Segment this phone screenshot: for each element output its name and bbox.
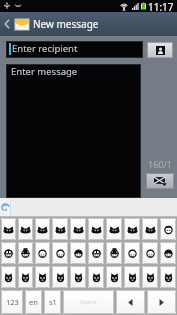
button[interactable]: [106, 266, 122, 288]
button[interactable]: [35, 266, 50, 288]
button[interactable]: [18, 242, 33, 264]
staticText: New message: [33, 17, 99, 31]
button[interactable]: Back: [0, 12, 13, 36]
staticText: Enter message: [11, 65, 78, 78]
button[interactable]: [88, 242, 104, 264]
button[interactable]: [142, 266, 158, 288]
button[interactable]: [160, 266, 176, 288]
button[interactable]: Enter message: [7, 65, 140, 197]
button[interactable]: [106, 218, 122, 240]
button[interactable]: [52, 266, 68, 288]
button[interactable]: Next: [147, 290, 176, 314]
button[interactable]: [35, 242, 50, 264]
button[interactable]: [124, 266, 140, 288]
button[interactable]: [1, 242, 16, 264]
button[interactable]: [18, 218, 33, 240]
button[interactable]: [160, 242, 176, 264]
staticText: Space: [80, 298, 97, 306]
button[interactable]: s1: [44, 290, 61, 314]
button[interactable]: Previous: [116, 290, 145, 314]
button[interactable]: Enter recipient: [7, 42, 142, 57]
button[interactable]: 123: [1, 290, 23, 314]
button[interactable]: [88, 218, 104, 240]
button[interactable]: [18, 266, 33, 288]
button[interactable]: [52, 242, 68, 264]
button[interactable]: [70, 242, 86, 264]
staticText: 160/1: [148, 158, 172, 170]
staticText: 123: [6, 297, 19, 307]
button[interactable]: [124, 218, 140, 240]
staticText: en: [29, 297, 38, 307]
button[interactable]: [106, 242, 122, 264]
button[interactable]: [52, 218, 68, 240]
button[interactable]: [88, 266, 104, 288]
button[interactable]: [142, 218, 158, 240]
button[interactable]: Send message: [146, 173, 174, 189]
staticText: s1: [49, 297, 57, 307]
button[interactable]: Switch input method: [0, 198, 10, 217]
button[interactable]: [1, 218, 16, 240]
button[interactable]: en: [25, 290, 42, 314]
button[interactable]: [142, 242, 158, 264]
button[interactable]: [124, 242, 140, 264]
button[interactable]: [35, 218, 50, 240]
staticText: 11:17: [148, 0, 174, 12]
button[interactable]: [70, 218, 86, 240]
staticText: Enter recipient: [12, 42, 78, 55]
button[interactable]: [70, 266, 86, 288]
button[interactable]: Space: [63, 290, 114, 314]
button[interactable]: [1, 266, 16, 288]
button[interactable]: Choose contact: [147, 42, 173, 58]
button[interactable]: [160, 218, 176, 240]
